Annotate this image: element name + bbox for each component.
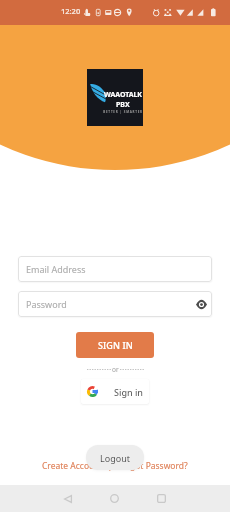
staticText: Email Address <box>26 263 86 275</box>
staticText: PBX <box>116 100 130 110</box>
staticText: BETTER | SMARTER <box>103 110 143 114</box>
staticText: Sign in <box>114 386 144 398</box>
staticText: | <box>103 460 117 472</box>
staticText: SIGN IN <box>98 339 133 351</box>
button[interactable]: SIGN IN <box>76 332 154 358</box>
staticText: WAAOTALK <box>104 90 142 100</box>
button[interactable]: Forgot Password? <box>117 460 188 472</box>
button[interactable]: Home <box>100 485 129 512</box>
button[interactable]: Password <box>18 291 212 317</box>
button[interactable]: Recents <box>147 485 176 512</box>
button[interactable]: Show password <box>190 293 212 315</box>
staticText: Logout <box>100 452 130 464</box>
button[interactable]: Email Address <box>18 256 212 282</box>
button[interactable]: Back <box>53 485 82 512</box>
staticText: or <box>112 365 119 374</box>
staticText: 12:20 <box>61 6 81 16</box>
button[interactable]: Create Account <box>42 460 103 472</box>
button[interactable]: Sign in <box>81 379 149 404</box>
staticText: Password <box>26 298 67 310</box>
